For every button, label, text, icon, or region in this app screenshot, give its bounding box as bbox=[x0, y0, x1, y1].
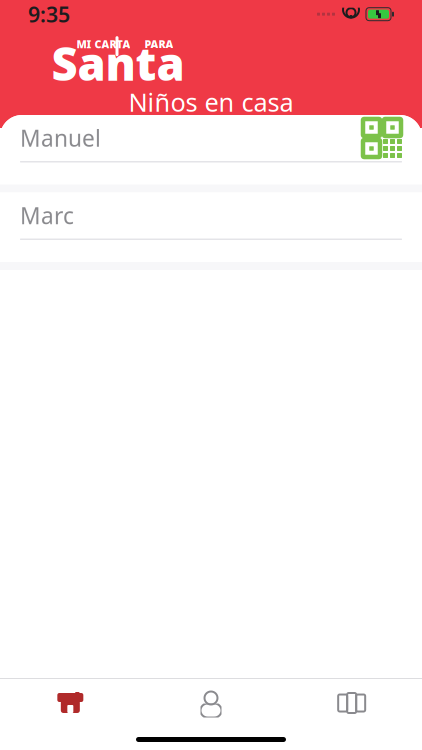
staticText: 9:35 bbox=[28, 0, 70, 28]
staticText: Niños en casa bbox=[128, 85, 293, 119]
staticText: MI CARTA bbox=[76, 37, 130, 51]
staticText: PARA bbox=[144, 37, 173, 51]
staticText: Santa bbox=[51, 33, 184, 93]
button[interactable]: Mapa bbox=[281, 679, 422, 727]
staticText: Manuel bbox=[20, 123, 101, 153]
staticText: Marc bbox=[20, 200, 74, 230]
button[interactable]: Perfil bbox=[141, 679, 281, 727]
button[interactable]: Marc bbox=[0, 192, 422, 262]
button[interactable]: Manuel bbox=[0, 115, 422, 184]
button[interactable]: Inicio bbox=[0, 679, 141, 727]
